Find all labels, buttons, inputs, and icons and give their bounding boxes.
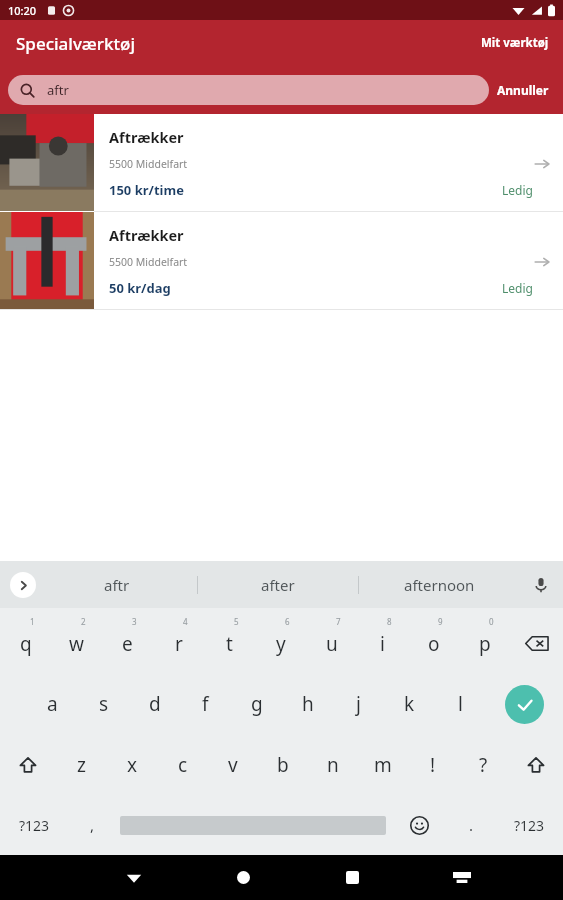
staticText: Annuller — [497, 82, 549, 98]
button[interactable]: v — [208, 735, 258, 795]
button[interactable]: Backspace — [510, 608, 563, 673]
button[interactable]: Annuller — [489, 76, 557, 104]
button[interactable]: Shift — [0, 735, 56, 795]
staticText: w — [69, 631, 84, 657]
button[interactable]: Home — [189, 855, 298, 900]
staticText: b — [277, 752, 289, 778]
button[interactable]: d — [129, 673, 180, 735]
button[interactable]: Shift — [508, 735, 563, 795]
staticText: p — [479, 631, 491, 657]
button[interactable]: j — [333, 673, 384, 735]
staticText: ! — [430, 752, 436, 778]
button[interactable]: 1 — [0, 608, 51, 673]
button[interactable]: 3 — [102, 608, 153, 673]
button[interactable]: Recents — [298, 855, 407, 900]
button[interactable]: Keyboard — [407, 855, 516, 900]
button[interactable]: Space — [116, 795, 390, 855]
button[interactable]: Mit værktøj — [481, 35, 549, 51]
button[interactable]: k — [384, 673, 435, 735]
staticText: s — [99, 691, 109, 717]
staticText: v — [228, 752, 238, 778]
staticText: Ledig — [502, 280, 533, 296]
button[interactable]: x — [107, 735, 158, 795]
staticText: 4 — [183, 616, 188, 627]
button[interactable]: l — [435, 673, 486, 735]
button[interactable]: Aftrækker — [0, 212, 563, 309]
button[interactable]: 0 — [459, 608, 510, 673]
staticText: ?123 — [514, 816, 545, 835]
button[interactable]: a — [27, 673, 78, 735]
button[interactable]: c — [158, 735, 208, 795]
staticText: afternoon — [404, 575, 475, 595]
button[interactable]: Specialværktøj — [16, 32, 135, 55]
button[interactable]: Voice input — [519, 561, 563, 608]
staticText: aftr — [47, 81, 69, 99]
staticText: r — [175, 631, 183, 657]
staticText: n — [327, 752, 339, 778]
button[interactable]: Back — [79, 855, 189, 900]
button[interactable]: n — [308, 735, 358, 795]
button[interactable]: Aftrækker — [0, 114, 563, 211]
button[interactable]: 5 — [204, 608, 255, 673]
button[interactable]: m — [358, 735, 408, 795]
staticText: , — [90, 815, 95, 835]
staticText: aftr — [104, 575, 130, 595]
staticText: l — [458, 691, 463, 717]
staticText: 2 — [81, 616, 86, 627]
staticText: . — [469, 815, 474, 835]
staticText: o — [428, 631, 440, 657]
staticText: i — [380, 631, 385, 657]
staticText: 9 — [438, 616, 443, 627]
staticText: d — [149, 691, 161, 717]
staticText: f — [202, 691, 209, 717]
button[interactable]: 9 — [408, 608, 459, 673]
staticText: Aftrækker — [109, 225, 184, 245]
button[interactable]: More suggestions — [10, 572, 36, 598]
staticText: u — [326, 631, 338, 657]
button[interactable]: Emoji — [390, 795, 448, 855]
button[interactable]: aftr — [36, 561, 197, 608]
staticText: Ledig — [502, 182, 533, 198]
button[interactable]: z — [56, 735, 107, 795]
staticText: q — [20, 631, 32, 657]
staticText: e — [122, 631, 133, 657]
button[interactable]: aftr — [8, 75, 489, 105]
staticText: g — [251, 691, 263, 717]
button[interactable]: h — [282, 673, 333, 735]
button[interactable]: ?123 — [0, 795, 69, 855]
button[interactable]: after — [198, 561, 358, 608]
staticText: after — [261, 575, 295, 595]
button[interactable]: 7 — [306, 608, 357, 673]
staticText: 5 — [234, 616, 239, 627]
staticText: 3 — [132, 616, 137, 627]
button[interactable]: , — [69, 795, 116, 855]
staticText: 1 — [30, 616, 35, 627]
staticText: h — [302, 691, 314, 717]
button[interactable]: 2 — [51, 608, 102, 673]
staticText: z — [77, 752, 86, 778]
staticText: 5500 Middelfart — [109, 157, 533, 171]
button[interactable]: 6 — [255, 608, 306, 673]
button[interactable]: b — [258, 735, 308, 795]
button[interactable]: afternoon — [359, 561, 519, 608]
button[interactable]: ?123 — [495, 795, 563, 855]
button[interactable]: g — [231, 673, 282, 735]
button[interactable]: . — [448, 795, 495, 855]
staticText: j — [356, 691, 361, 717]
button[interactable]: 4 — [153, 608, 204, 673]
staticText: 0 — [489, 616, 494, 627]
button[interactable]: 8 — [357, 608, 408, 673]
button[interactable]: f — [180, 673, 231, 735]
button[interactable]: ! — [408, 735, 458, 795]
button[interactable]: Search — [486, 673, 563, 735]
other: Open — [533, 253, 551, 271]
staticText: 6 — [285, 616, 290, 627]
staticText: c — [178, 752, 188, 778]
button[interactable]: s — [78, 673, 129, 735]
staticText: 10:20 — [8, 3, 37, 18]
staticText: Aftrækker — [109, 127, 184, 147]
staticText: ?123 — [19, 816, 50, 835]
button[interactable]: ? — [458, 735, 508, 795]
other: Open — [533, 155, 551, 173]
staticText: ? — [479, 752, 488, 778]
